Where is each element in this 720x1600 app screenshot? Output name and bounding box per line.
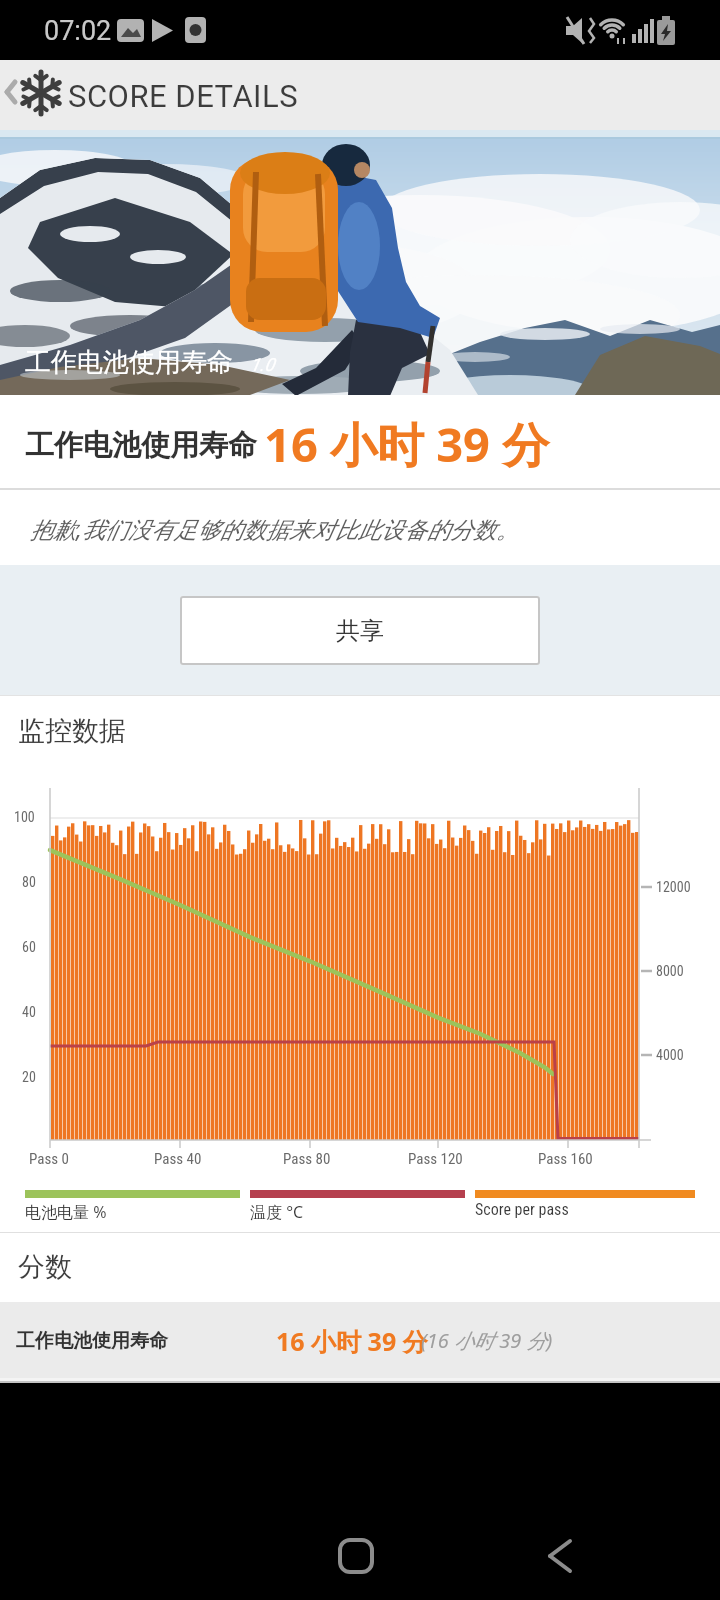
staticText: 1.0 bbox=[250, 354, 275, 375]
staticText: 16 小时 39 分 bbox=[276, 1324, 428, 1358]
staticText: 抱歉,我们没有足够的数据来对比此设备的分数。 bbox=[30, 513, 519, 544]
staticText: 60 bbox=[22, 939, 36, 955]
staticText: 40 bbox=[22, 1004, 36, 1020]
staticText: 4000 bbox=[656, 1047, 684, 1063]
staticText: 温度 °C bbox=[250, 1201, 304, 1223]
staticText: 12000 bbox=[656, 879, 691, 895]
staticText: SCORE DETAILS bbox=[68, 78, 299, 114]
staticText: Pass 80 bbox=[283, 1150, 331, 1168]
staticText: 分数 bbox=[18, 1250, 72, 1284]
staticText: Pass 40 bbox=[154, 1150, 202, 1168]
staticText: 监控数据 bbox=[18, 714, 126, 748]
staticText: 工作电池使用寿命 bbox=[25, 427, 257, 464]
button[interactable]: 工作电池使用寿命 bbox=[0, 1302, 720, 1378]
staticText: Pass 0 bbox=[29, 1150, 69, 1168]
staticText: 工作电池使用寿命 bbox=[25, 346, 233, 379]
staticText: (16 小时 39 分) bbox=[421, 1327, 553, 1354]
staticText: 07:02 bbox=[44, 15, 112, 47]
staticText: 工作电池使用寿命 bbox=[16, 1329, 168, 1353]
staticText: 100 bbox=[14, 809, 35, 825]
staticText: 16 小时 39 分 bbox=[264, 412, 550, 476]
staticText: 电池电量 % bbox=[25, 1201, 107, 1223]
staticText: 80 bbox=[22, 874, 36, 890]
staticText: Score per pass bbox=[475, 1200, 569, 1219]
button[interactable] bbox=[330, 1530, 382, 1582]
staticText: Pass 120 bbox=[408, 1150, 463, 1168]
button[interactable] bbox=[0, 60, 64, 130]
staticText: 共享 bbox=[336, 616, 384, 646]
button[interactable]: 共享 bbox=[180, 596, 540, 665]
staticText: 20 bbox=[22, 1069, 36, 1085]
button[interactable] bbox=[534, 1530, 586, 1582]
staticText: Pass 160 bbox=[538, 1150, 593, 1168]
staticText: 8000 bbox=[656, 963, 684, 979]
